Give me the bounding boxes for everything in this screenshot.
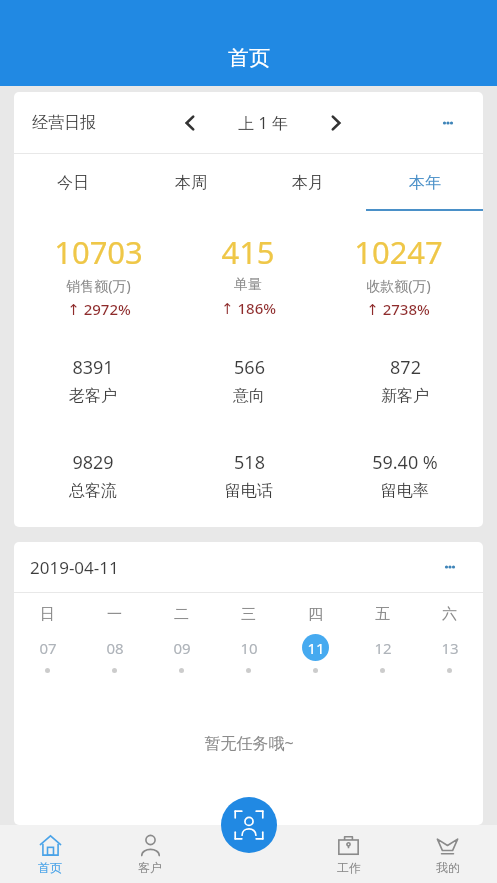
staticText: 12 — [374, 638, 392, 658]
staticText: 今日 — [57, 173, 89, 193]
staticText: 单量 — [234, 276, 262, 294]
staticText: 首页 — [38, 860, 62, 875]
staticText: 08 — [106, 638, 124, 658]
button[interactable]: 9829 — [14, 450, 171, 501]
staticText: 872 — [390, 355, 421, 380]
button[interactable]: 我的 — [398, 825, 497, 883]
staticText: 本月 — [292, 173, 324, 193]
button[interactable]: 10 — [215, 634, 282, 673]
staticText: ↑ 2972% — [67, 299, 131, 319]
button[interactable]: 10703 — [24, 231, 173, 319]
staticText: 二 — [174, 605, 189, 624]
button[interactable]: 08 — [81, 634, 148, 673]
staticText: 8391 — [72, 355, 114, 380]
button[interactable]: 首页 — [0, 825, 100, 883]
staticText: 销售额(万) — [66, 276, 131, 295]
staticText: 415 — [221, 231, 275, 273]
staticText: 2019-04-11 — [30, 556, 119, 579]
button[interactable]: 12 — [349, 634, 416, 673]
staticText: 收款额(万) — [366, 276, 431, 295]
staticText: 518 — [234, 450, 265, 475]
staticText: 新客户 — [381, 386, 429, 406]
staticText: 留电话 — [225, 481, 273, 501]
staticText: 四 — [308, 605, 323, 624]
button[interactable]: 工作 — [299, 825, 398, 883]
button[interactable]: 518 — [171, 450, 327, 501]
staticText: 上 1 年 — [238, 112, 288, 134]
staticText: 三 — [241, 605, 256, 624]
button[interactable]: 上一个 — [173, 106, 207, 140]
staticText: 566 — [234, 355, 265, 380]
staticText: 五 — [375, 605, 390, 624]
staticText: ↑ 2738% — [366, 299, 430, 319]
staticText: 07 — [39, 638, 57, 658]
button[interactable]: 扫一扫 — [221, 797, 277, 853]
button[interactable]: 13 — [416, 634, 483, 673]
button[interactable]: 8391 — [14, 355, 171, 406]
button[interactable]: 下一个 — [319, 106, 353, 140]
staticText: 经营日报 — [32, 113, 96, 133]
staticText: 意向 — [233, 386, 265, 406]
staticText: 一 — [107, 605, 122, 624]
staticText: 工作 — [337, 860, 361, 875]
staticText: 59.40 % — [372, 450, 438, 475]
staticText: 日 — [40, 605, 55, 624]
staticText: 客户 — [138, 860, 162, 875]
button[interactable]: 10247 — [323, 231, 473, 319]
staticText: 09 — [173, 638, 191, 658]
button[interactable]: 59.40 % — [327, 450, 483, 501]
button[interactable]: 今日 — [14, 154, 132, 211]
staticText: 9829 — [72, 450, 114, 475]
staticText: 暂无任务哦~ — [204, 732, 294, 754]
staticText: ↑ 186% — [221, 298, 276, 318]
staticText: 10 — [240, 638, 258, 658]
staticText: 老客户 — [69, 386, 117, 406]
button[interactable]: 11 — [282, 634, 349, 673]
staticText: 10247 — [354, 231, 443, 273]
staticText: 本年 — [409, 173, 441, 193]
staticText: 11 — [307, 638, 325, 658]
button[interactable]: 566 — [171, 355, 327, 406]
staticText: 13 — [441, 638, 459, 658]
staticText: 首页 — [228, 45, 270, 71]
staticText: 本周 — [175, 173, 207, 193]
button[interactable]: 客户 — [100, 825, 200, 883]
staticText: 总客流 — [69, 481, 117, 501]
staticText: 10703 — [54, 231, 143, 273]
button[interactable]: 本周 — [132, 154, 249, 211]
button[interactable]: 更多 — [431, 106, 465, 140]
button[interactable]: 872 — [327, 355, 483, 406]
button[interactable]: 本年 — [366, 154, 483, 211]
button[interactable]: 更多 — [433, 550, 467, 584]
staticText: 六 — [442, 605, 457, 624]
button[interactable]: 本月 — [249, 154, 366, 211]
staticText: 我的 — [436, 860, 460, 875]
staticText: 留电率 — [381, 481, 429, 501]
button[interactable]: 07 — [14, 634, 81, 673]
button[interactable]: 09 — [148, 634, 215, 673]
button[interactable]: 415 — [173, 231, 323, 318]
